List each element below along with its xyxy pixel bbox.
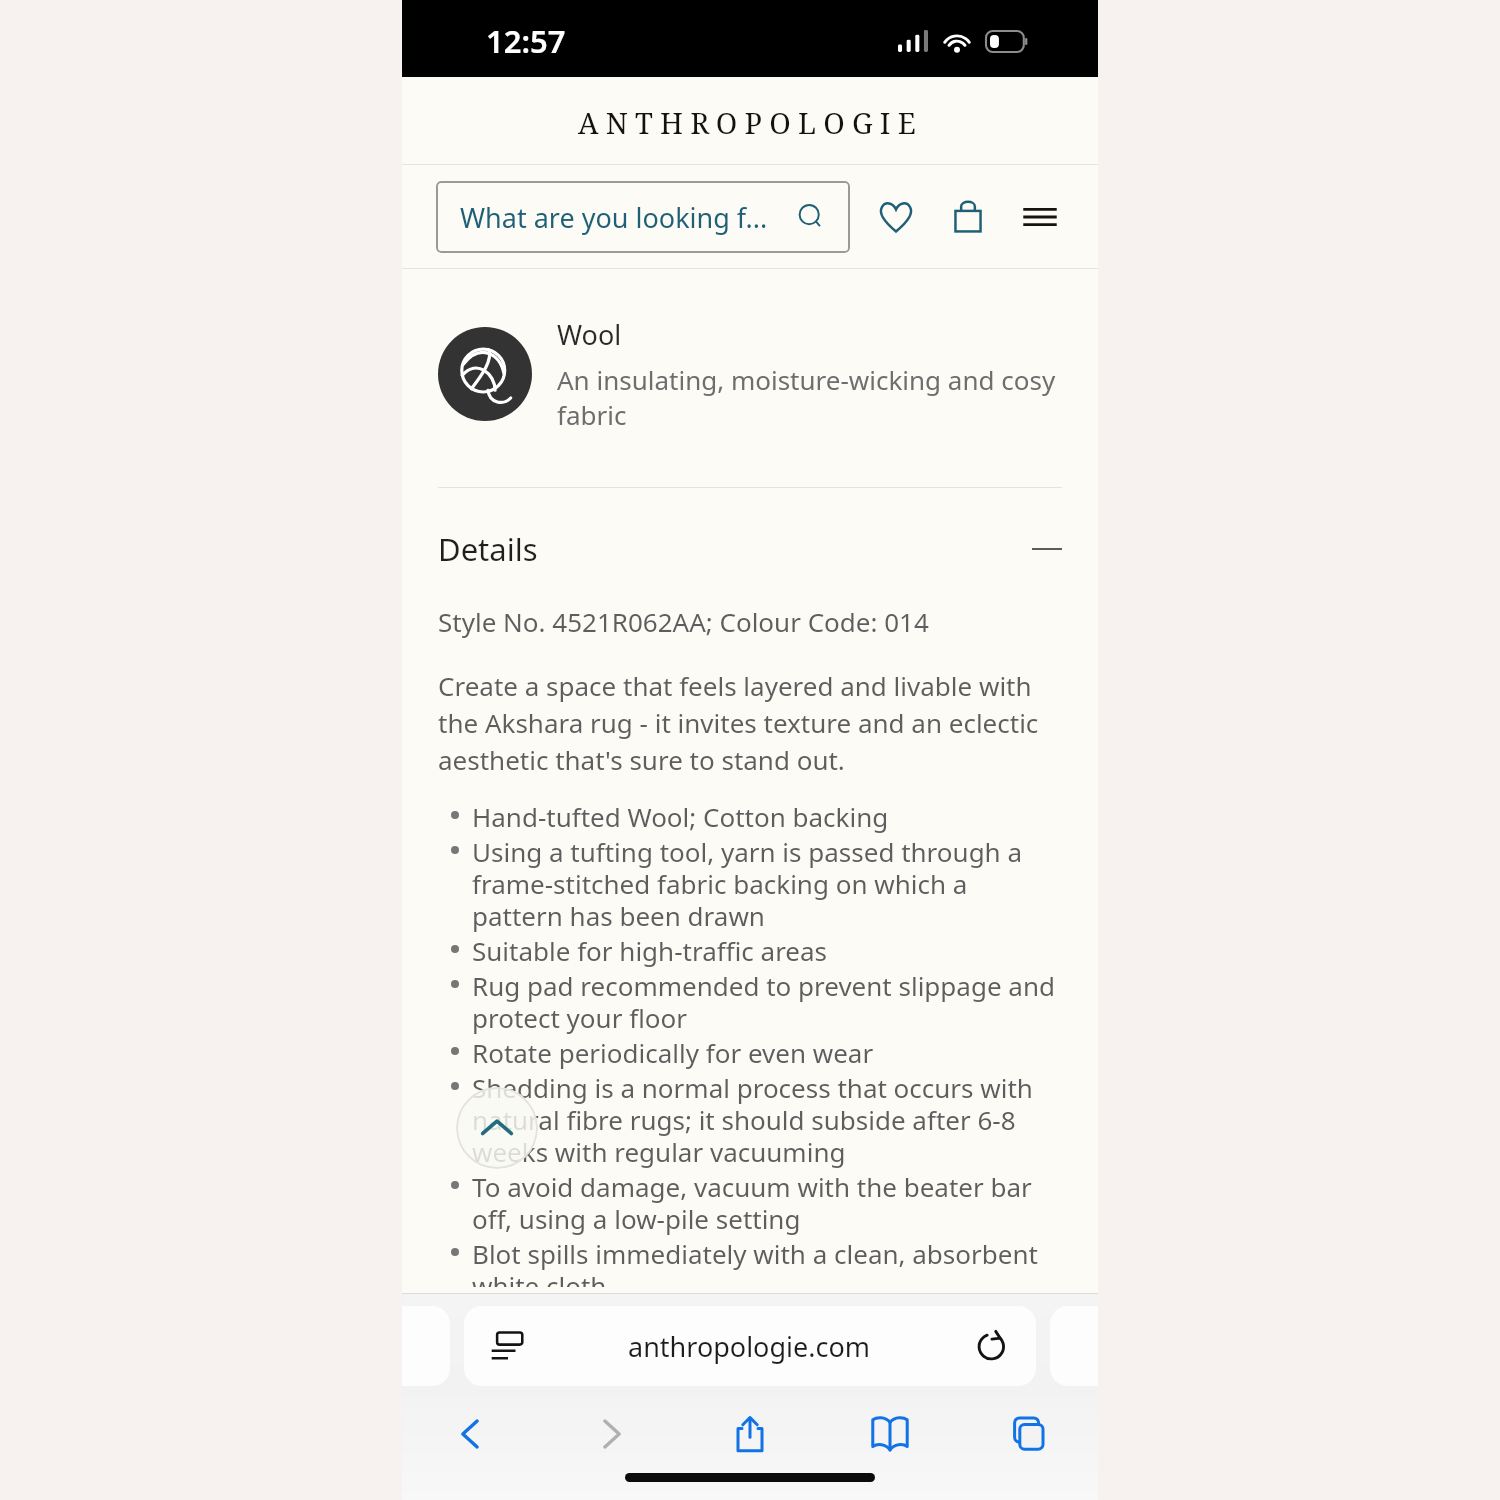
staticText: Blot spills immediately with a clean, ab… <box>472 1236 1062 1287</box>
staticText: 12:57 <box>486 20 566 62</box>
staticText: Style No. 4521R062AA; Colour Code: 014 <box>438 604 929 639</box>
staticText: Suitable for high-traffic areas <box>472 933 828 968</box>
button[interactable]: Share <box>705 1399 795 1469</box>
button[interactable]: Reload <box>974 1328 1010 1364</box>
staticText: Create a space that feels layered and li… <box>438 668 1062 778</box>
staticText: Details <box>438 528 538 570</box>
button[interactable]: Details <box>438 526 1062 572</box>
button[interactable]: Back <box>426 1399 516 1469</box>
staticText: An insulating, moisture-wicking and cosy… <box>557 362 1062 432</box>
staticText: What are you looking f... <box>460 199 790 236</box>
button[interactable]: Forward <box>566 1399 656 1469</box>
button[interactable]: What are you looking f... <box>436 181 850 253</box>
staticText: Rug pad recommended to prevent slippage … <box>472 968 1062 1035</box>
button[interactable]: Scroll to top <box>456 1087 538 1169</box>
button[interactable]: Bookmarks <box>845 1399 935 1469</box>
button[interactable]: Page settings <box>490 1328 526 1364</box>
button[interactable]: Tabs <box>984 1399 1074 1469</box>
button[interactable]: Menu <box>1012 189 1068 245</box>
staticText: ANTHROPOLOGIE <box>578 103 923 142</box>
staticText: Wool <box>557 316 622 353</box>
staticText: Using a tufting tool, yarn is passed thr… <box>472 834 1062 933</box>
staticText: anthropologie.com <box>628 1328 871 1365</box>
staticText: Hand-tufted Wool; Cotton backing <box>472 799 889 834</box>
button[interactable]: Wool <box>438 316 1062 432</box>
staticText: Shedding is a normal process that occurs… <box>472 1070 1062 1169</box>
button[interactable]: Wishlist <box>868 189 924 245</box>
staticText: To avoid damage, vacuum with the beater … <box>472 1169 1062 1236</box>
staticText: Rotate periodically for even wear <box>472 1035 874 1070</box>
button[interactable]: Shopping bag <box>940 189 996 245</box>
button[interactable]: Page settings <box>464 1306 1036 1386</box>
